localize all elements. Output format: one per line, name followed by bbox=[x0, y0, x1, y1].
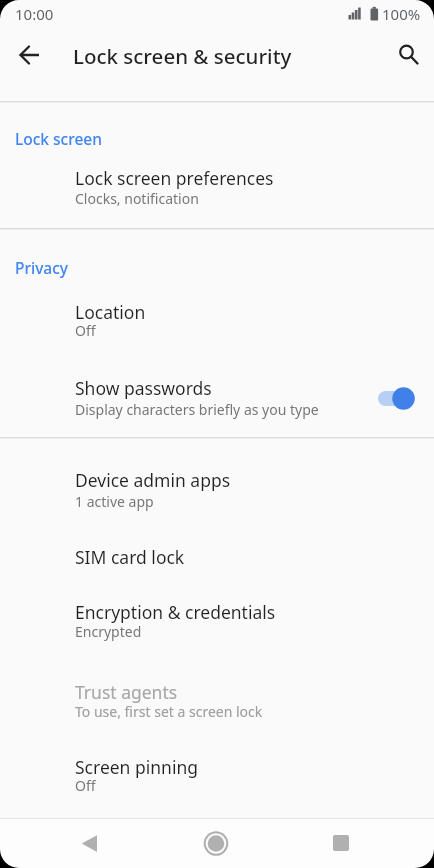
staticText: Location bbox=[75, 300, 146, 324]
button[interactable] bbox=[387, 33, 427, 73]
staticText: Screen pinning bbox=[75, 755, 198, 779]
staticText: Off bbox=[75, 321, 96, 340]
staticText: Lock screen preferences bbox=[75, 166, 274, 190]
button[interactable] bbox=[65, 819, 113, 868]
staticText: Lock screen & security bbox=[73, 42, 292, 70]
staticText: Privacy bbox=[15, 257, 69, 278]
button[interactable] bbox=[192, 819, 240, 868]
button[interactable] bbox=[317, 819, 365, 868]
staticText: Trust agents bbox=[75, 680, 178, 704]
staticText: Device admin apps bbox=[75, 468, 231, 492]
button[interactable]: Encryption & credentials bbox=[0, 587, 434, 657]
staticText: 100% bbox=[382, 4, 421, 24]
staticText: 1 active app bbox=[75, 492, 154, 511]
staticText: Encrypted bbox=[75, 622, 142, 641]
button[interactable]: Show passwords bbox=[0, 364, 434, 434]
staticText: Display characters briefly as you type bbox=[75, 400, 319, 419]
button[interactable] bbox=[10, 36, 50, 76]
staticText: To use, first set a screen lock bbox=[75, 702, 263, 721]
staticText: Lock screen bbox=[15, 128, 102, 149]
staticText: Show passwords bbox=[75, 376, 212, 400]
staticText: SIM card lock bbox=[75, 545, 185, 569]
button[interactable]: Device admin apps bbox=[0, 455, 434, 527]
button[interactable]: Screen pinning bbox=[0, 741, 434, 811]
staticText: 10:00 bbox=[15, 4, 54, 24]
staticText: Encryption & credentials bbox=[75, 600, 276, 624]
button[interactable]: Lock screen preferences bbox=[0, 152, 434, 222]
staticText: Clocks, notification bbox=[75, 189, 199, 208]
staticText: Off bbox=[75, 776, 96, 795]
button[interactable]: Location bbox=[0, 286, 434, 356]
button[interactable]: SIM card lock bbox=[0, 531, 434, 583]
